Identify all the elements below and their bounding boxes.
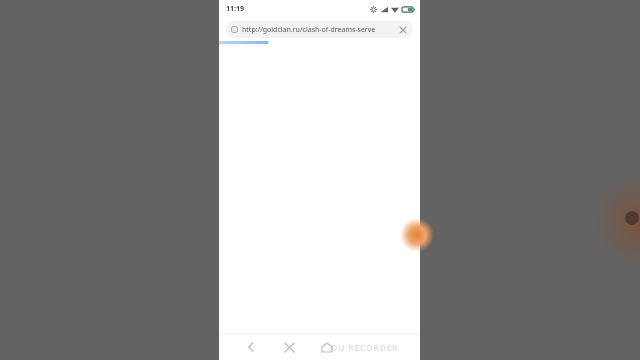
button[interactable]: Close [279, 337, 299, 357]
staticText: http://goldclan.ru/clash-of-dreams-serve [242, 25, 395, 35]
button[interactable]: Stop loading [398, 25, 408, 35]
staticText: DU RECORDER [331, 341, 399, 353]
staticText: 11:19 [226, 4, 244, 14]
button[interactable]: Back [241, 337, 261, 357]
other: Page info [231, 26, 238, 33]
button[interactable]: Home [317, 337, 337, 357]
button[interactable]: Page info [226, 21, 413, 38]
